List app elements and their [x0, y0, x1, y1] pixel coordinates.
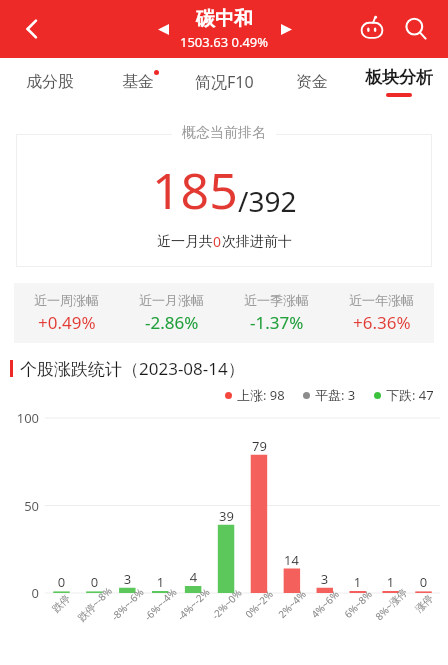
staticText: 概念当前排名: [182, 124, 266, 142]
staticText: 近一周涨幅: [34, 292, 99, 308]
button[interactable]: 近一季涨幅: [224, 292, 329, 334]
button[interactable]: 成分股: [6, 58, 94, 106]
staticText: 14: [275, 551, 308, 569]
staticText: 6%~8%: [341, 587, 375, 621]
button[interactable]: 近一年涨幅: [329, 292, 434, 334]
staticText: -2.86%: [145, 311, 199, 334]
button[interactable]: Previous: [146, 12, 180, 46]
staticText: 成分股: [26, 72, 74, 92]
staticText: 185: [152, 156, 238, 224]
staticText: 简况F10: [195, 71, 254, 93]
staticText: 下跌: 47: [386, 386, 434, 404]
staticText: 39: [210, 507, 243, 525]
staticText: 100: [6, 409, 39, 427]
staticText: 1: [374, 573, 407, 591]
staticText: +6.36%: [353, 311, 411, 334]
staticText: 板块分析: [365, 67, 433, 88]
staticText: 0: [6, 584, 39, 602]
button[interactable]: 基金: [94, 58, 181, 106]
staticText: 2%~4%: [275, 587, 309, 621]
staticText: /392: [238, 182, 297, 220]
staticText: -2%~0%: [208, 586, 245, 622]
staticText: 0: [78, 573, 111, 591]
button[interactable]: Assistant: [350, 7, 394, 51]
button[interactable]: 资金: [268, 58, 355, 106]
staticText: 跌停~-8%: [74, 584, 115, 624]
staticText: 平盘: 3: [315, 386, 356, 404]
button[interactable]: Search: [394, 7, 438, 51]
staticText: -8%~-6%: [108, 585, 147, 623]
staticText: 50: [6, 497, 39, 515]
staticText: 1: [341, 573, 374, 591]
staticText: 4: [177, 568, 210, 586]
staticText: -4%~-2%: [174, 585, 213, 623]
staticText: -1.37%: [250, 311, 304, 334]
staticText: 3: [308, 570, 341, 588]
button[interactable]: 简况F10: [181, 58, 268, 106]
staticText: 涨停: [412, 592, 436, 615]
staticText: 上涨: 98: [237, 386, 285, 404]
staticText: 次排进前十: [222, 233, 292, 251]
staticText: 79: [243, 437, 276, 455]
button[interactable]: 近一月涨幅: [119, 292, 224, 334]
staticText: 碳中和: [196, 7, 253, 31]
staticText: 0: [407, 573, 440, 591]
staticText: 基金: [122, 72, 154, 92]
staticText: 0: [45, 573, 78, 591]
staticText: -6%~-4%: [141, 585, 180, 623]
staticText: 1: [144, 573, 177, 591]
staticText: 近一月涨幅: [139, 292, 204, 308]
staticText: 近一年涨幅: [349, 292, 414, 308]
staticText: 资金: [296, 72, 328, 92]
staticText: 近一月共: [157, 233, 213, 251]
staticText: 0%~2%: [242, 587, 276, 621]
staticText: 4%~6%: [308, 587, 342, 621]
staticText: 跌停: [49, 592, 73, 615]
staticText: 近一季涨幅: [244, 292, 309, 308]
button[interactable]: Back: [8, 5, 56, 53]
button[interactable]: 板块分析: [355, 58, 442, 106]
staticText: 个股涨跌统计（2023-08-14）: [20, 357, 245, 380]
staticText: 1503.63 0.49%: [180, 33, 269, 51]
staticText: 8%~涨停: [372, 585, 410, 623]
staticText: +0.49%: [38, 311, 96, 334]
staticText: 3: [111, 570, 144, 588]
staticText: 0: [213, 232, 222, 251]
button[interactable]: Next: [269, 12, 303, 46]
button[interactable]: 近一周涨幅: [14, 292, 119, 334]
